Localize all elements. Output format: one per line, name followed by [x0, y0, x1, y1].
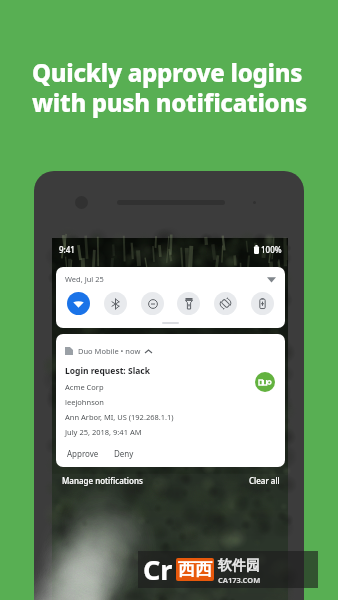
- button[interactable]: Manage notifications: [62, 475, 143, 486]
- button[interactable]: Approve: [65, 445, 101, 462]
- staticText: Quickly approve logins with push notific…: [32, 56, 307, 119]
- staticText: Clear all: [249, 475, 280, 486]
- staticText: Approve: [67, 448, 99, 459]
- staticText: 软件园: [218, 557, 260, 575]
- button[interactable]: Bluetooth: [104, 292, 127, 315]
- button[interactable]: Do not disturb: [141, 292, 164, 315]
- staticText: Ann Arbor, MI, US (192.268.1.1): [65, 412, 174, 422]
- staticText: July 25, 2018, 9:41 AM: [65, 427, 142, 437]
- staticText: Cr: [143, 551, 173, 588]
- staticText: 100%: [261, 244, 282, 255]
- button[interactable]: Deny: [112, 445, 136, 462]
- staticText: Acme Corp: [65, 382, 104, 392]
- staticText: CA173.COM: [218, 575, 261, 585]
- button[interactable]: Clear all: [249, 475, 280, 486]
- button[interactable]: Flashlight: [177, 292, 200, 315]
- staticText: leejohnson: [65, 397, 104, 407]
- button[interactable]: Auto rotate: [214, 292, 237, 315]
- button[interactable]: Wi-Fi: [67, 292, 90, 315]
- staticText: 9:41: [59, 244, 75, 255]
- staticText: Deny: [114, 448, 134, 459]
- staticText: Wed, Jul 25: [65, 274, 104, 284]
- staticText: Login request: Slack: [65, 365, 150, 377]
- staticText: 西西: [178, 559, 212, 580]
- staticText: Duo Mobile • now: [78, 346, 141, 356]
- staticText: Manage notifications: [62, 475, 143, 486]
- button[interactable]: Battery saver: [251, 292, 274, 315]
